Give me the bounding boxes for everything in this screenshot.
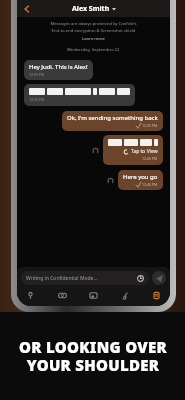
button[interactable]: Attach	[119, 289, 132, 302]
button[interactable]: Ok, I'm sending something back	[62, 111, 163, 131]
button[interactable]: Alex Smith	[72, 4, 116, 14]
button[interactable]: Hey Judi. This is Alex!	[24, 60, 93, 80]
button[interactable]: Learn more	[82, 36, 105, 42]
staticText: Ok, I'm sending something back	[67, 114, 158, 122]
button[interactable]: 12:16 PM	[24, 84, 135, 106]
staticText: 12:46 PM	[142, 156, 158, 161]
button[interactable]: Gallery	[87, 289, 100, 302]
staticText: OR LOOKING OVER YOUR SHOULDER	[19, 337, 167, 376]
button[interactable]: Microphone	[24, 289, 37, 302]
button[interactable]: Camera	[56, 289, 69, 302]
button[interactable]: Document	[150, 289, 163, 302]
staticText: Messages are always protected by Confide…	[50, 21, 137, 33]
button[interactable]: Back	[21, 3, 33, 15]
staticText: 12:46 PM	[142, 182, 158, 187]
staticText: Learn more	[82, 36, 105, 42]
button[interactable]: Here you go	[118, 170, 163, 190]
staticText: 12:25 PM	[142, 123, 158, 128]
button[interactable]: Send	[152, 271, 166, 285]
staticText: Alex Smith	[72, 4, 110, 14]
button[interactable]: Tap to View	[103, 135, 163, 165]
staticText: Here you go	[123, 173, 158, 181]
staticText: Hey Judi. This is Alex!	[29, 63, 88, 71]
staticText: 12:16 PM	[29, 97, 45, 102]
staticText: 12:05 PM	[29, 72, 45, 77]
button[interactable]: Writing in Confidential Mode...	[21, 271, 149, 285]
staticText: Tap to View	[131, 148, 158, 155]
staticText: Writing in Confidential Mode...	[26, 275, 98, 282]
staticText: Wednesday, September 22	[67, 47, 120, 53]
